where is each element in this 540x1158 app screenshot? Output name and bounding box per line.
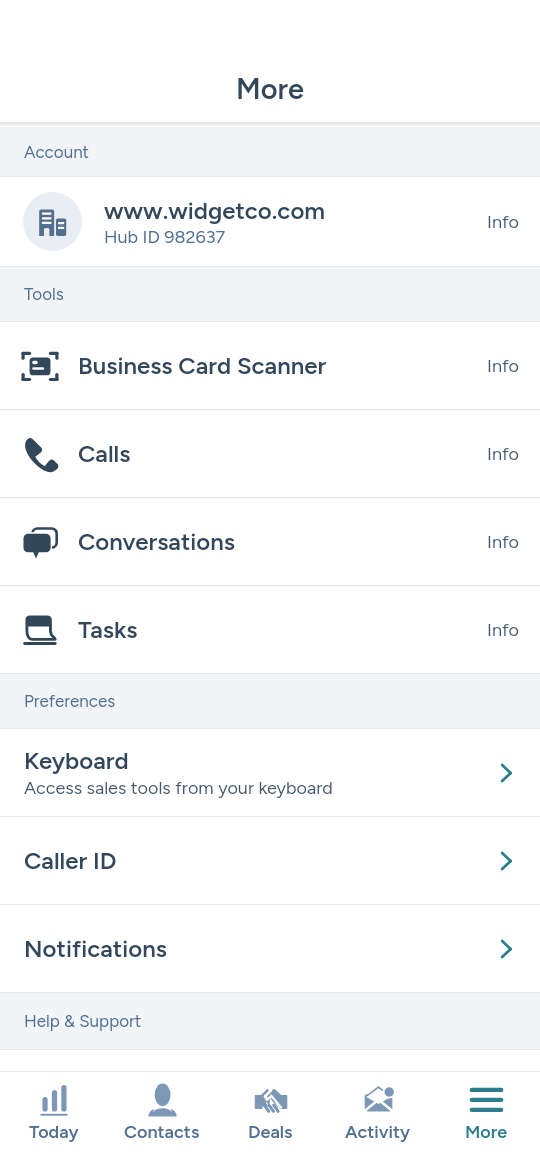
staticText: Keyboard bbox=[24, 746, 129, 775]
button[interactable]: Contacts bbox=[108, 1072, 216, 1158]
staticText: Tasks bbox=[78, 615, 487, 644]
button[interactable]: www.widgetco.com bbox=[0, 177, 540, 266]
staticText: Info bbox=[487, 619, 519, 641]
staticText: More bbox=[236, 71, 305, 106]
staticText: Info bbox=[487, 531, 519, 553]
staticText: Caller ID bbox=[24, 846, 117, 875]
button[interactable]: Calls bbox=[0, 410, 540, 497]
button[interactable]: Business Card Scanner bbox=[0, 322, 540, 409]
staticText: Business Card Scanner bbox=[78, 351, 487, 380]
staticText: Tools bbox=[24, 284, 64, 304]
staticText: Deals bbox=[248, 1121, 293, 1143]
staticText: Hub ID 982637 bbox=[104, 226, 226, 248]
button[interactable]: Conversations bbox=[0, 498, 540, 585]
staticText: Conversations bbox=[78, 527, 487, 556]
staticText: Contacts bbox=[124, 1121, 200, 1143]
staticText: Account bbox=[24, 142, 90, 162]
staticText: Activity bbox=[345, 1121, 411, 1143]
staticText: Help & Support bbox=[24, 1011, 142, 1031]
button[interactable]: Tasks bbox=[0, 586, 540, 673]
staticText: Notifications bbox=[24, 934, 167, 963]
button[interactable]: Today bbox=[0, 1072, 108, 1158]
staticText: Today bbox=[29, 1121, 79, 1143]
staticText: Info bbox=[487, 443, 519, 465]
staticText: www.widgetco.com bbox=[104, 196, 326, 225]
staticText: Info bbox=[487, 211, 519, 233]
staticText: More bbox=[465, 1121, 508, 1143]
button[interactable]: Notifications bbox=[0, 905, 540, 992]
button[interactable]: Activity bbox=[324, 1072, 432, 1158]
button[interactable]: Keyboard bbox=[0, 729, 540, 816]
button[interactable]: Deals bbox=[216, 1072, 324, 1158]
staticText: Calls bbox=[78, 439, 487, 468]
button[interactable]: Caller ID bbox=[0, 817, 540, 904]
staticText: Info bbox=[487, 355, 519, 377]
staticText: Access sales tools from your keyboard bbox=[24, 777, 333, 799]
button[interactable]: More bbox=[432, 1072, 540, 1158]
staticText: Preferences bbox=[24, 691, 116, 711]
